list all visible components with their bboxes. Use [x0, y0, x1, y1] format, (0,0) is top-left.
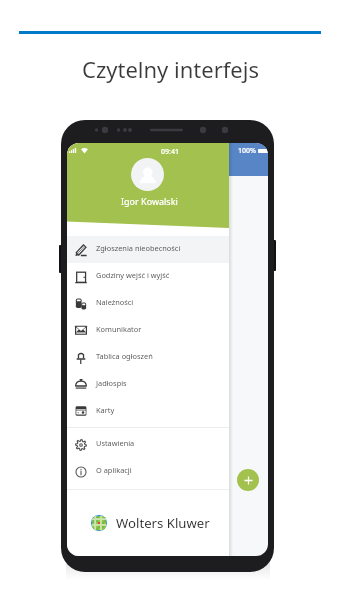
button[interactable]: Komunikator: [67, 317, 229, 344]
staticText: Igor Kowalski: [121, 195, 178, 207]
staticText: Ustawienia: [96, 438, 135, 448]
button[interactable]: Godziny wejść i wyjść: [67, 263, 229, 290]
staticText: Tablica ogłoszeń: [96, 351, 153, 361]
button[interactable]: Zgłoszenia nieobecności: [67, 236, 229, 263]
staticText: Jadłospis: [96, 378, 127, 388]
staticText: Komunikator: [96, 324, 142, 334]
staticText: Godziny wejść i wyjść: [96, 270, 170, 280]
button[interactable]: O aplikacji: [67, 458, 229, 485]
staticText: Karty: [96, 405, 115, 415]
staticText: 09:41: [161, 147, 179, 157]
staticText: Zgłoszenia nieobecności: [96, 243, 181, 253]
staticText: Czytelny interfejs: [82, 54, 259, 84]
staticText: Należności: [96, 297, 134, 307]
button[interactable]: Tablica ogłoszeń: [67, 344, 229, 371]
button[interactable]: Należności: [67, 290, 229, 317]
button[interactable]: Jadłospis: [67, 371, 229, 398]
staticText: Wolters Kluwer: [116, 514, 210, 532]
staticText: 100%: [238, 146, 256, 155]
button[interactable]: Add: [237, 469, 259, 491]
button[interactable]: Karty: [67, 398, 229, 425]
button[interactable]: Ustawienia: [67, 431, 229, 458]
staticText: O aplikacji: [96, 465, 132, 475]
